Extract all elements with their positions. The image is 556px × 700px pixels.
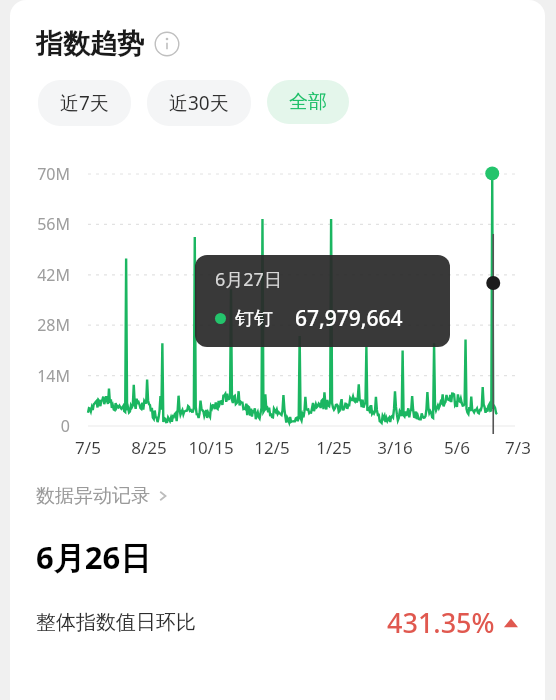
staticText: 近30天	[169, 90, 229, 116]
staticText: 8/25	[131, 436, 167, 459]
staticText: 整体指数值日环比	[36, 610, 196, 635]
staticText: 7/5	[75, 436, 101, 459]
staticText: 70M	[37, 163, 70, 185]
staticText: 56M	[37, 213, 70, 235]
staticText: 3/16	[377, 436, 413, 459]
staticText: 28M	[37, 314, 70, 336]
button[interactable]: Info	[154, 31, 180, 57]
staticText: 1/25	[316, 436, 352, 459]
button[interactable]: 近30天	[147, 80, 251, 126]
staticText: 全部	[289, 90, 327, 114]
staticText: 6月26日	[36, 536, 152, 578]
staticText: 数据异动记录	[36, 484, 150, 508]
staticText: 指数趋势	[36, 27, 144, 61]
staticText: 6月27日	[215, 267, 282, 292]
staticText: 14M	[37, 365, 70, 387]
staticText: 7/3	[505, 436, 531, 459]
button[interactable]: 数据异动记录	[36, 484, 170, 508]
button[interactable]: 近7天	[38, 80, 131, 126]
staticText: 42M	[37, 264, 70, 286]
staticText: 431.35%	[387, 604, 495, 641]
staticText: 0	[60, 415, 70, 437]
staticText: 67,979,664	[295, 304, 403, 333]
staticText: 近7天	[60, 90, 109, 116]
button[interactable]: 全部	[267, 80, 349, 124]
staticText: 5/6	[444, 436, 470, 459]
staticText: 10/15	[188, 436, 234, 459]
staticText: 12/5	[254, 436, 290, 459]
staticText: 钉钉	[235, 307, 273, 331]
